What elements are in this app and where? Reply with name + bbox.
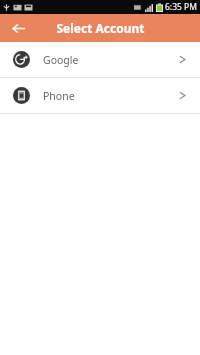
staticText: Select Account xyxy=(56,20,145,36)
button[interactable]: Back xyxy=(6,16,30,40)
staticText: 6:35 PM xyxy=(165,1,197,13)
staticText: Google xyxy=(43,53,79,67)
button[interactable]: Phone xyxy=(0,78,200,113)
staticText: Phone xyxy=(43,89,75,103)
button[interactable]: Google xyxy=(0,42,200,77)
